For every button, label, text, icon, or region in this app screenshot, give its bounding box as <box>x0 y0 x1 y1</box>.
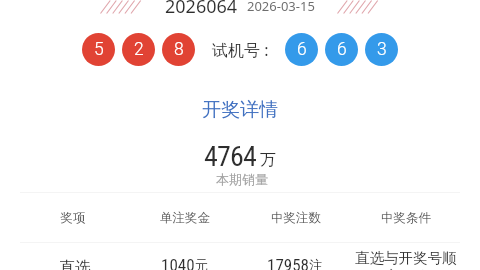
button[interactable]: 2 <box>122 33 155 66</box>
staticText: 试机号 : <box>212 39 269 61</box>
button[interactable]: 6 <box>325 33 358 66</box>
other: decorative stripes left <box>99 0 141 14</box>
staticText: 2026-03-15 <box>247 0 315 15</box>
staticText: 2026064 <box>165 0 238 19</box>
staticText: 4764 <box>204 140 257 173</box>
staticText: 开奖详情 <box>202 98 278 122</box>
staticText: 奖项 <box>8 210 138 226</box>
staticText: 3 <box>377 39 387 60</box>
staticText: 直选与开奖号顺序一致 <box>350 249 462 270</box>
button[interactable]: 开奖详情 <box>180 96 300 124</box>
other: decorative stripes right <box>336 0 378 14</box>
staticText: 2 <box>134 39 144 60</box>
staticText: 5 <box>94 39 104 60</box>
staticText: 17958 <box>267 255 309 270</box>
staticText: 6 <box>297 39 307 60</box>
staticText: 元 <box>195 257 209 270</box>
staticText: 中奖条件 <box>341 210 471 226</box>
button[interactable]: 直选 <box>0 243 480 270</box>
staticText: 1040 <box>161 255 195 270</box>
staticText: 6 <box>337 39 347 60</box>
staticText: 注 <box>309 257 323 270</box>
staticText: 直选 <box>10 258 140 270</box>
staticText: 万 <box>260 150 276 170</box>
button[interactable]: 6 <box>285 33 318 66</box>
button[interactable]: 8 <box>162 33 195 66</box>
staticText: 单注奖金 <box>120 210 250 226</box>
button[interactable]: 3 <box>365 33 398 66</box>
button[interactable]: 5 <box>82 33 115 66</box>
staticText: 本期销量 <box>177 171 307 187</box>
staticText: 8 <box>174 39 184 60</box>
staticText: 中奖注数 <box>231 210 361 226</box>
